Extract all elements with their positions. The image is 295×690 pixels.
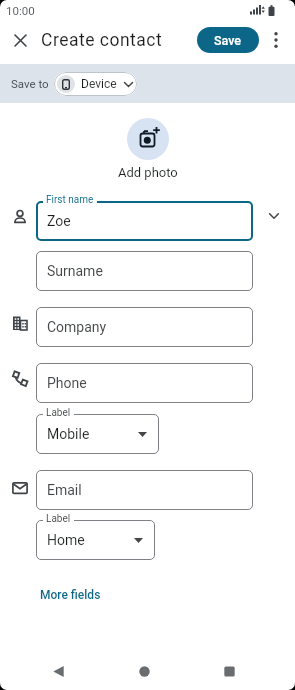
button[interactable]: Mobile xyxy=(36,414,159,454)
staticText: Zoe xyxy=(47,213,71,229)
button[interactable]: Zoe xyxy=(36,201,253,241)
staticText: Mobile xyxy=(47,426,90,442)
staticText: Create contact xyxy=(41,30,163,51)
button[interactable] xyxy=(262,26,290,54)
button[interactable]: Phone xyxy=(36,363,253,403)
staticText: Label xyxy=(46,407,71,419)
button[interactable]: Save xyxy=(197,27,259,53)
staticText: Save to xyxy=(11,77,49,90)
staticText: Add photo xyxy=(118,165,178,180)
button[interactable]: More fields xyxy=(40,588,101,602)
button[interactable] xyxy=(253,213,295,219)
button[interactable]: Email xyxy=(36,470,253,510)
staticText: First name xyxy=(46,194,94,206)
staticText: Email xyxy=(47,482,82,498)
button[interactable]: Surname xyxy=(36,251,253,291)
staticText: Home xyxy=(47,532,85,548)
button[interactable] xyxy=(127,118,169,160)
button[interactable]: Company xyxy=(36,307,253,347)
staticText: 10:00 xyxy=(6,4,35,17)
button[interactable] xyxy=(8,28,32,52)
staticText: Device xyxy=(81,77,117,91)
staticText: Label xyxy=(46,513,71,525)
button[interactable] xyxy=(207,653,251,690)
button[interactable] xyxy=(122,653,166,690)
staticText: Surname xyxy=(47,263,103,279)
staticText: Phone xyxy=(47,375,87,391)
button[interactable]: Device xyxy=(54,72,137,96)
button[interactable]: Home xyxy=(36,520,155,560)
staticText: Save xyxy=(214,33,242,48)
staticText: Company xyxy=(47,319,107,335)
button[interactable] xyxy=(36,653,80,690)
